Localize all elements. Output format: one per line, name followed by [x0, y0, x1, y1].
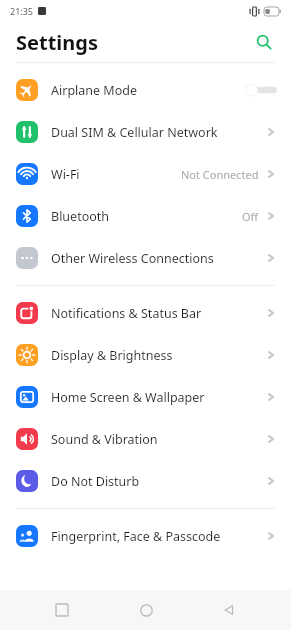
- button[interactable]: Display & Brightness: [0, 334, 291, 376]
- button[interactable]: Fingerprint, Face & Passcode: [0, 515, 291, 557]
- staticText: Off: [242, 209, 259, 224]
- staticText: 21:35: [10, 5, 34, 17]
- button[interactable]: Back: [207, 590, 251, 630]
- button[interactable]: Airplane Mode: [0, 69, 291, 111]
- staticText: Sound & Vibration: [51, 431, 265, 448]
- staticText: Fingerprint, Face & Passcode: [51, 528, 265, 545]
- button[interactable]: Home Screen & Wallpaper: [0, 376, 291, 418]
- staticText: Wi-Fi: [51, 166, 181, 183]
- staticText: Notifications & Status Bar: [51, 305, 265, 322]
- staticText: Do Not Disturb: [51, 473, 265, 490]
- button[interactable]: Dual SIM & Cellular Network: [0, 111, 291, 153]
- button[interactable]: Recent apps: [40, 590, 84, 630]
- staticText: Dual SIM & Cellular Network: [51, 124, 265, 141]
- staticText: Not Connected: [181, 167, 259, 182]
- staticText: Bluetooth: [51, 208, 242, 225]
- button[interactable]: Wi-Fi: [0, 153, 291, 195]
- button[interactable]: Search: [251, 29, 277, 55]
- button[interactable]: Other Wireless Connections: [0, 237, 291, 279]
- staticText: Display & Brightness: [51, 347, 265, 364]
- staticText: Home Screen & Wallpaper: [51, 389, 265, 406]
- button[interactable]: Home: [124, 590, 168, 630]
- button[interactable]: Do Not Disturb: [0, 460, 291, 502]
- staticText: Airplane Mode: [51, 82, 245, 99]
- staticText: Settings: [16, 29, 251, 56]
- button[interactable]: Sound & Vibration: [0, 418, 291, 460]
- staticText: Other Wireless Connections: [51, 250, 265, 267]
- button[interactable]: Notifications & Status Bar: [0, 292, 291, 334]
- button[interactable]: Bluetooth: [0, 195, 291, 237]
